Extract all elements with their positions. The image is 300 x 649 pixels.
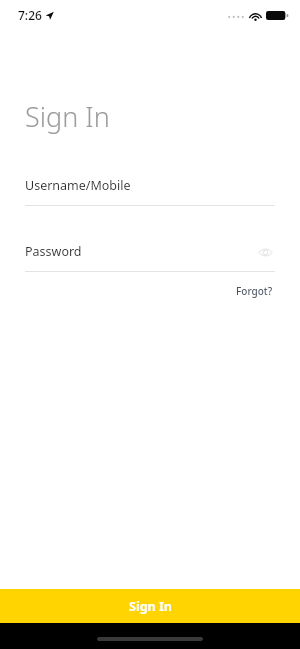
button[interactable]: Show password (255, 242, 275, 262)
button[interactable]: Sign In (0, 589, 300, 623)
staticText: Sign In (129, 598, 172, 615)
button[interactable]: Forgot? (234, 282, 275, 300)
button[interactable]: Password (25, 239, 275, 272)
staticText: Sign In (25, 98, 110, 135)
staticText: Username/Mobile (25, 177, 131, 194)
staticText: Password (25, 243, 82, 260)
staticText: 7:26 (18, 7, 42, 23)
button[interactable]: Username/Mobile (25, 173, 275, 206)
staticText: Forgot? (236, 284, 273, 298)
